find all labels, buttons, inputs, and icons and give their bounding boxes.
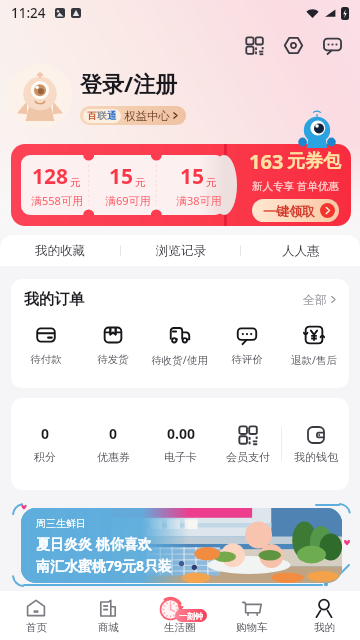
staticText: 0: [41, 424, 50, 443]
staticText: 全部: [303, 292, 327, 307]
staticText: 人人惠: [282, 243, 320, 259]
button[interactable]: 我的收藏: [0, 235, 120, 266]
button[interactable]: 退款/售后: [280, 324, 347, 367]
staticText: 满69可用: [105, 193, 151, 208]
button[interactable]: 一键领取: [252, 199, 339, 222]
staticText: 南汇水蜜桃79元8只装: [36, 556, 173, 575]
button[interactable]: Avatar: [8, 64, 72, 128]
staticText: 我的收藏: [35, 243, 85, 259]
staticText: 积分: [34, 450, 56, 464]
button[interactable]: 购物车: [216, 591, 288, 640]
staticText: 0: [109, 424, 118, 443]
staticText: 元: [206, 176, 217, 189]
staticText: 会员支付: [226, 450, 270, 464]
staticText: 周三生鲜日: [36, 517, 86, 530]
button[interactable]: Settings: [278, 30, 308, 60]
staticText: 15: [180, 162, 205, 191]
button[interactable]: 0: [11, 424, 79, 464]
staticText: 权益中心: [124, 109, 170, 123]
button[interactable]: 一刻钟: [144, 591, 216, 640]
staticText: 联: [97, 110, 107, 122]
staticText: 优惠券: [97, 450, 130, 464]
staticText: 我的订单: [24, 290, 84, 309]
staticText: 首页: [26, 621, 47, 634]
staticText: 15: [109, 162, 134, 191]
staticText: 生活圈: [164, 621, 196, 634]
staticText: 待评价: [231, 353, 263, 366]
button[interactable]: Messages: [317, 30, 347, 60]
staticText: 退款/售后: [291, 353, 337, 367]
staticText: 百: [87, 110, 97, 122]
button[interactable]: 待付款: [13, 324, 79, 366]
staticText: 一键领取: [263, 203, 315, 219]
button[interactable]: 人人惠: [241, 235, 360, 266]
staticText: 我的: [314, 621, 335, 634]
button[interactable]: 待收货/使用: [146, 324, 213, 367]
button[interactable]: 商城: [72, 591, 144, 640]
staticText: 满558可用: [31, 193, 83, 208]
button[interactable]: 首页: [0, 591, 72, 640]
staticText: 购物车: [236, 621, 268, 634]
staticText: 我的钱包: [294, 450, 338, 464]
staticText: 新人专享 首单优惠: [252, 179, 339, 193]
staticText: 登录/注册: [80, 68, 178, 98]
staticText: 待发货: [97, 353, 129, 366]
button[interactable]: 我的钱包: [282, 425, 349, 464]
staticText: 元: [135, 176, 146, 189]
staticText: 待收货/使用: [151, 353, 208, 367]
staticText: 待付款: [30, 353, 62, 366]
button[interactable]: Scan QR code: [239, 30, 269, 60]
staticText: 商城: [98, 621, 119, 634]
button[interactable]: 我的: [288, 591, 360, 640]
button[interactable]: 全部: [303, 292, 338, 307]
button[interactable]: 浏览记录: [121, 235, 240, 266]
staticText: 满38可用: [176, 193, 222, 208]
staticText: 通: [107, 110, 117, 122]
staticText: 0.00: [167, 424, 195, 443]
staticText: 一刻钟: [179, 611, 203, 621]
staticText: 163: [249, 148, 284, 175]
button[interactable]: 128: [11, 144, 351, 226]
button[interactable]: 待评价: [213, 324, 280, 366]
button[interactable]: 待发货: [79, 324, 146, 366]
staticText: 128: [32, 162, 69, 191]
button[interactable]: 0: [79, 424, 147, 464]
button[interactable]: 百: [80, 106, 186, 125]
button[interactable]: 0.00: [147, 424, 214, 464]
staticText: 11:24: [11, 4, 46, 22]
staticText: 浏览记录: [156, 243, 206, 259]
staticText: 元券包: [287, 150, 341, 173]
staticText: 元: [70, 176, 81, 189]
button[interactable]: 周三生鲜日: [21, 508, 342, 583]
button[interactable]: 会员支付: [214, 425, 281, 464]
staticText: 夏日炎炎 桃你喜欢: [36, 534, 152, 553]
staticText: 电子卡: [164, 450, 197, 464]
